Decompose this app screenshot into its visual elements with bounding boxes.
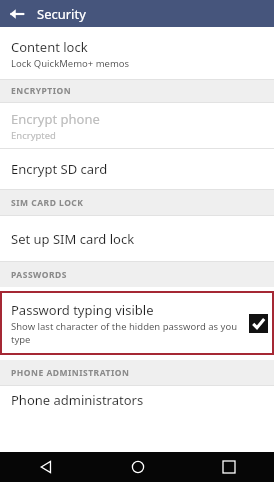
staticText: ENCRYPTION [11, 85, 72, 97]
staticText: PASSWORDS [11, 269, 67, 281]
staticText: Password typing visible [11, 301, 154, 319]
staticText: PHONE ADMINISTRATION [11, 367, 130, 379]
staticText: SIM CARD LOCK [11, 197, 84, 209]
staticText: Encrypted [11, 129, 56, 142]
staticText: Show last character of the hidden passwo… [11, 320, 245, 346]
staticText: Set up SIM card lock [11, 230, 135, 248]
staticText: Encrypt SD card [11, 160, 108, 178]
button[interactable]: Encrypt SD card [0, 149, 274, 189]
button[interactable]: Home [92, 452, 183, 482]
button[interactable]: Phone administrators [0, 386, 274, 414]
staticText: Encrypt phone [11, 110, 100, 128]
button: Encrypt phone [0, 103, 274, 148]
button[interactable]: Password typing visible, checked [249, 314, 268, 333]
button[interactable]: Back [0, 452, 92, 482]
staticText: Content lock [11, 38, 88, 56]
staticText: Phone administrators [11, 391, 144, 409]
staticText: Security [37, 5, 86, 23]
button[interactable]: Recent apps [183, 452, 274, 482]
button[interactable]: Password typing visible [0, 291, 274, 355]
button[interactable]: Content lock [0, 34, 274, 74]
button[interactable]: Set up SIM card lock [0, 216, 274, 261]
staticText: Lock QuickMemo+ memos [11, 57, 130, 70]
button[interactable]: Back [3, 0, 31, 27]
